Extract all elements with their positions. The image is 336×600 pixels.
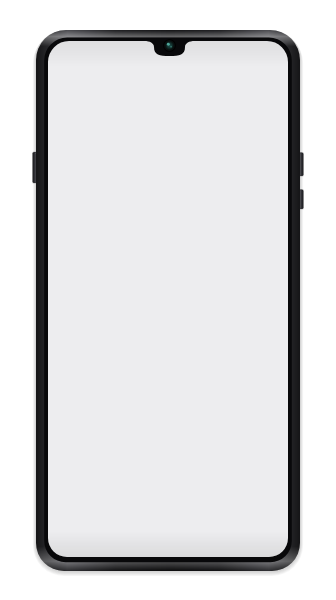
button[interactable]: Smartphone device mockup with blank scre… (0, 0, 336, 600)
